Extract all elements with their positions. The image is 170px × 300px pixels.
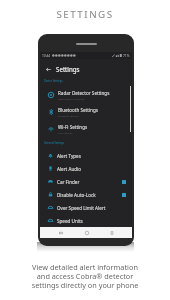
button[interactable]: Speed Units bbox=[40, 214, 132, 227]
staticText: General Settings bbox=[44, 141, 65, 145]
staticText: Device Settings bbox=[44, 79, 63, 83]
staticText: Wi-Fi Settings bbox=[58, 124, 88, 130]
staticText: SETTINGS bbox=[0, 8, 170, 21]
staticText: Radar detector settings bbox=[58, 97, 85, 100]
staticText: Bluetooth settings bbox=[58, 114, 79, 117]
staticText: Alert Types bbox=[57, 153, 81, 159]
button[interactable]: Wi-Fi Settings bbox=[40, 120, 132, 137]
button[interactable]: Home bbox=[82, 228, 91, 237]
staticText: Car Finder bbox=[57, 179, 80, 185]
staticText: Settings bbox=[56, 65, 80, 73]
button[interactable]: Back bbox=[56, 228, 65, 237]
button[interactable]: Alert Audio bbox=[40, 162, 132, 175]
button[interactable]: Radar Detector Settings bbox=[40, 86, 132, 103]
staticText: Alert Audio bbox=[57, 166, 82, 172]
staticText: 71% bbox=[123, 54, 130, 58]
staticText: 10:44 bbox=[42, 54, 51, 58]
button[interactable]: Back bbox=[44, 65, 52, 73]
button[interactable]: Disable Auto-Lock bbox=[40, 188, 132, 201]
staticText: Bluetooth Settings bbox=[58, 107, 98, 113]
button[interactable]: Alert Types bbox=[40, 149, 132, 162]
staticText: Speed Units bbox=[57, 218, 83, 224]
button[interactable]: Car Finder bbox=[40, 175, 132, 188]
staticText: Radar Detector Settings bbox=[58, 90, 110, 96]
staticText: WiFi Settings bbox=[58, 131, 73, 134]
staticText: Disable Auto-Lock bbox=[57, 192, 96, 198]
button[interactable]: Recents bbox=[107, 228, 116, 237]
staticText: View detailed alert information and acce… bbox=[0, 262, 170, 290]
button[interactable]: Over Speed Limit Alert bbox=[40, 201, 132, 214]
button[interactable]: Bluetooth Settings bbox=[40, 103, 132, 120]
staticText: Over Speed Limit Alert bbox=[57, 205, 106, 211]
